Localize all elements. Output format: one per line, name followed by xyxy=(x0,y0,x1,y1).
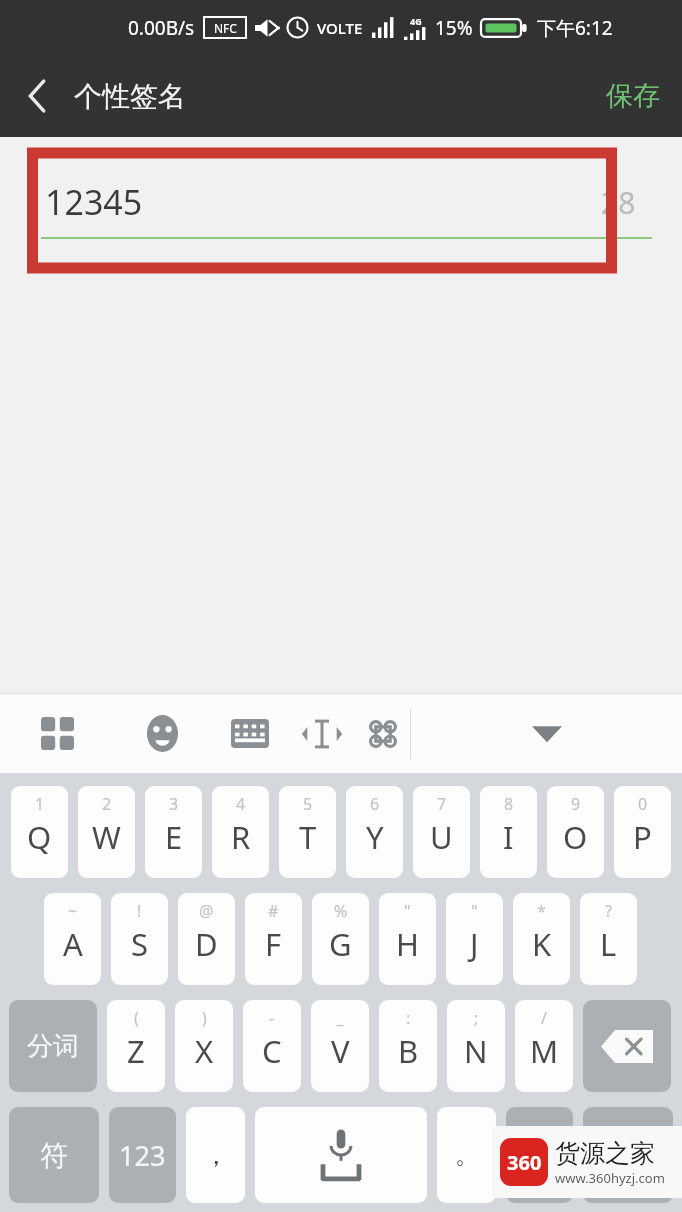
button[interactable]: 。 xyxy=(437,1107,496,1203)
staticText: K xyxy=(532,923,552,965)
staticText: 1 xyxy=(35,793,45,815)
button[interactable]: Emoji xyxy=(115,694,210,773)
staticText: ， xyxy=(203,1139,229,1172)
staticText: F xyxy=(265,923,282,965)
staticText: 4G xyxy=(410,15,422,27)
staticText: ? xyxy=(605,900,612,922)
staticText: 15% xyxy=(435,15,473,41)
staticText: / xyxy=(541,1007,547,1029)
staticText: Q xyxy=(27,816,52,858)
staticText: T xyxy=(299,816,317,858)
staticText: G xyxy=(329,923,352,965)
button[interactable]: 3 xyxy=(145,786,202,878)
button[interactable] xyxy=(583,1107,673,1203)
button[interactable]: # xyxy=(245,893,302,985)
button[interactable]: 6 xyxy=(346,786,403,878)
button[interactable]: ! xyxy=(111,893,168,985)
staticText: VOLTE xyxy=(317,18,363,38)
staticText: N xyxy=(464,1030,488,1072)
button[interactable]: ) xyxy=(175,1000,233,1092)
button[interactable]: : xyxy=(379,1000,437,1092)
button[interactable]: ? xyxy=(580,893,637,985)
staticText: S xyxy=(131,923,149,965)
staticText: 0.00B/s xyxy=(128,15,195,41)
button[interactable]: ; xyxy=(447,1000,505,1092)
staticText: 28 xyxy=(601,182,636,223)
button[interactable]: Keyboard settings xyxy=(210,694,289,773)
staticText: ) xyxy=(202,1007,207,1029)
button[interactable]: / xyxy=(515,1000,573,1092)
staticText: 2 xyxy=(102,793,112,815)
button[interactable]: 1 xyxy=(11,786,68,878)
staticText: * xyxy=(537,900,546,922)
staticText: J xyxy=(470,923,479,965)
staticText: U xyxy=(430,816,453,858)
button[interactable]: 分词 xyxy=(9,1000,97,1092)
staticText: _ xyxy=(336,1007,344,1029)
button[interactable]: " xyxy=(379,893,436,985)
button[interactable]: - xyxy=(243,1000,301,1092)
staticText: B xyxy=(398,1030,419,1072)
staticText: ; xyxy=(474,1007,479,1029)
staticText: NFC xyxy=(214,20,237,36)
button[interactable]: ， xyxy=(186,1107,245,1203)
button[interactable]: Delete xyxy=(583,1000,671,1092)
staticText: 。 xyxy=(455,1140,479,1170)
staticText: " xyxy=(471,900,478,922)
staticText: www.360hyzj.com xyxy=(555,1169,665,1187)
button[interactable]: Keyboard layouts xyxy=(0,694,115,773)
button[interactable]: 符 xyxy=(9,1107,99,1203)
button[interactable]: ( xyxy=(107,1000,165,1092)
button[interactable]: 5 xyxy=(279,786,336,878)
staticText: H xyxy=(396,923,419,965)
button[interactable]: Shortcuts xyxy=(355,694,410,773)
staticText: 保存 xyxy=(606,79,660,113)
staticText: # xyxy=(268,900,279,922)
button[interactable]: _ xyxy=(311,1000,369,1092)
button[interactable] xyxy=(506,1107,573,1203)
button[interactable]: @ xyxy=(178,893,235,985)
button[interactable]: 12345 xyxy=(0,137,682,397)
staticText: 3 xyxy=(169,793,179,815)
button[interactable]: ~ xyxy=(44,893,101,985)
button[interactable]: 9 xyxy=(547,786,604,878)
staticText: L xyxy=(600,923,617,965)
staticText: V xyxy=(331,1030,350,1072)
button[interactable]: Back xyxy=(0,55,74,137)
button[interactable]: * xyxy=(513,893,570,985)
staticText: 123 xyxy=(119,1137,166,1174)
button[interactable]: 123 xyxy=(109,1107,176,1203)
button[interactable]: 8 xyxy=(480,786,537,878)
staticText: ! xyxy=(137,900,142,922)
staticText: 个性签名 xyxy=(74,79,186,114)
staticText: 5 xyxy=(303,793,313,815)
button[interactable]: " xyxy=(446,893,503,985)
button[interactable]: 4 xyxy=(212,786,269,878)
staticText: P xyxy=(633,816,652,858)
staticText: R xyxy=(231,816,251,858)
staticText: 下午6:12 xyxy=(537,15,613,41)
staticText: 符 xyxy=(40,1138,68,1173)
staticText: 360 xyxy=(507,1149,542,1176)
button[interactable]: 2 xyxy=(78,786,135,878)
staticText: ~ xyxy=(68,900,78,922)
staticText: @ xyxy=(199,900,214,922)
staticText: 4 xyxy=(236,793,246,815)
staticText: % xyxy=(334,900,348,922)
staticText: ( xyxy=(134,1007,139,1029)
staticText: E xyxy=(165,816,183,858)
staticText: " xyxy=(404,900,411,922)
button[interactable]: 保存 xyxy=(584,55,682,137)
staticText: D xyxy=(195,923,218,965)
button[interactable]: Move cursor xyxy=(289,694,355,773)
staticText: W xyxy=(92,816,121,858)
button[interactable]: Hide keyboard xyxy=(411,694,682,773)
staticText: X xyxy=(195,1030,214,1072)
button[interactable]: % xyxy=(312,893,369,985)
button[interactable]: 7 xyxy=(413,786,470,878)
staticText: C xyxy=(262,1030,282,1072)
staticText: O xyxy=(563,816,588,858)
button[interactable]: Space xyxy=(255,1107,427,1203)
button[interactable]: 0 xyxy=(614,786,671,878)
staticText: 7 xyxy=(437,793,447,815)
